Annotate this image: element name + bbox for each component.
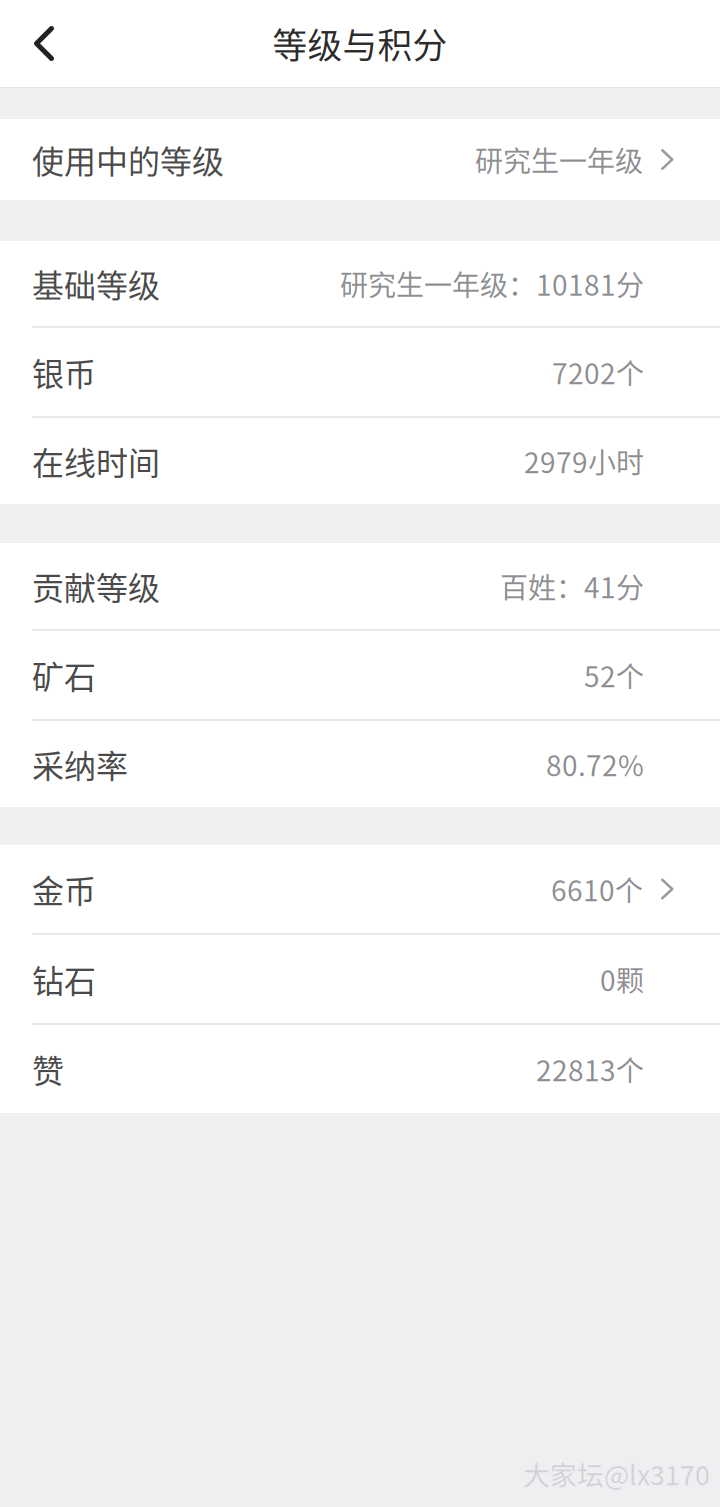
staticText: 7202个 [552,352,644,392]
staticText: 基础等级 [32,260,160,307]
staticText: 贡献等级 [32,563,160,609]
staticText: 金币 [32,866,96,912]
staticText: 大家坛@lx3170 [523,1454,710,1493]
button[interactable]: 使用中的等级 [0,119,720,200]
staticText: 等级与积分 [272,18,447,69]
button[interactable]: 基础等级 [0,241,720,326]
staticText: 采纳率 [32,741,128,787]
button[interactable]: 矿石 [0,631,720,719]
button[interactable]: 贡献等级 [0,543,720,629]
button[interactable]: 银币 [0,328,720,416]
staticText: 研究生一年级：10181分 [340,263,644,304]
staticText: 0颗 [600,959,644,999]
staticText: 2979小时 [524,441,644,481]
staticText: 80.72% [546,744,644,784]
button[interactable]: 钻石 [0,935,720,1023]
staticText: 6610个 [551,869,643,909]
staticText: 在线时间 [32,438,160,484]
staticText: 52个 [584,655,644,695]
staticText: 钻石 [32,956,96,1002]
staticText: 使用中的等级 [32,136,224,183]
button[interactable]: 赞 [0,1025,720,1113]
button[interactable]: 金币 [0,845,720,933]
button[interactable]: 在线时间 [0,418,720,504]
button[interactable]: Back [0,0,76,87]
staticText: 赞 [32,1046,64,1092]
button[interactable]: 采纳率 [0,721,720,807]
staticText: 银币 [32,349,96,395]
staticText: 百姓：41分 [500,566,644,606]
staticText: 矿石 [32,652,96,698]
staticText: 22813个 [536,1049,644,1089]
staticText: 研究生一年级 [475,139,643,180]
